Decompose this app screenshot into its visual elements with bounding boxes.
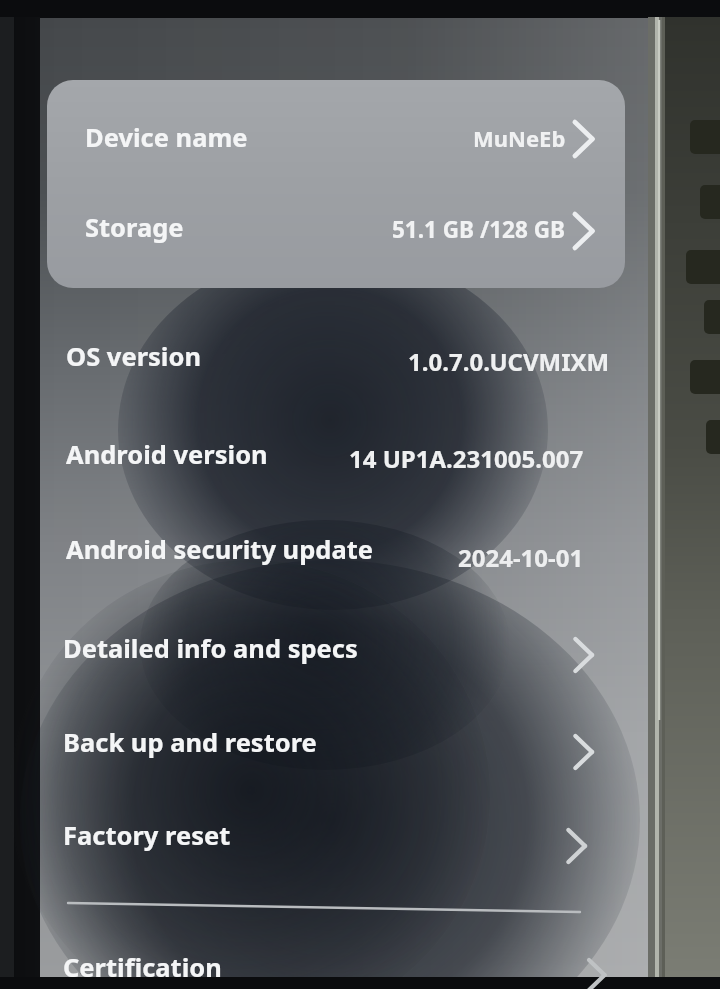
staticText: 14 UP1A.231005.007 [349, 442, 584, 475]
staticText: OS version [66, 339, 201, 374]
staticText: Certification [63, 950, 222, 985]
staticText: 51.1 GB /128 GB [392, 214, 565, 245]
staticText: Android version [66, 437, 268, 472]
staticText: 2024-10-01 [458, 541, 584, 574]
staticText: Android security update [66, 532, 373, 567]
button[interactable]: OS version [47, 312, 625, 404]
button[interactable]: Storage [47, 184, 625, 288]
staticText: Back up and restore [63, 725, 317, 760]
button[interactable]: Detailed info and specs [47, 604, 625, 696]
staticText: 1.0.7.0.UCVMIXM [408, 345, 610, 378]
button[interactable]: Certification [47, 930, 625, 978]
button[interactable]: Device name [47, 80, 625, 184]
staticText: Factory reset [63, 818, 231, 853]
staticText: Detailed info and specs [63, 631, 358, 666]
button[interactable]: Android security update [47, 506, 625, 598]
button[interactable]: Factory reset [47, 792, 625, 884]
staticText: Storage [85, 210, 184, 245]
button[interactable]: Android version [47, 410, 625, 502]
staticText: MuNeEb [473, 123, 566, 153]
staticText: Device name [85, 120, 248, 155]
button[interactable]: Back up and restore [47, 700, 625, 792]
